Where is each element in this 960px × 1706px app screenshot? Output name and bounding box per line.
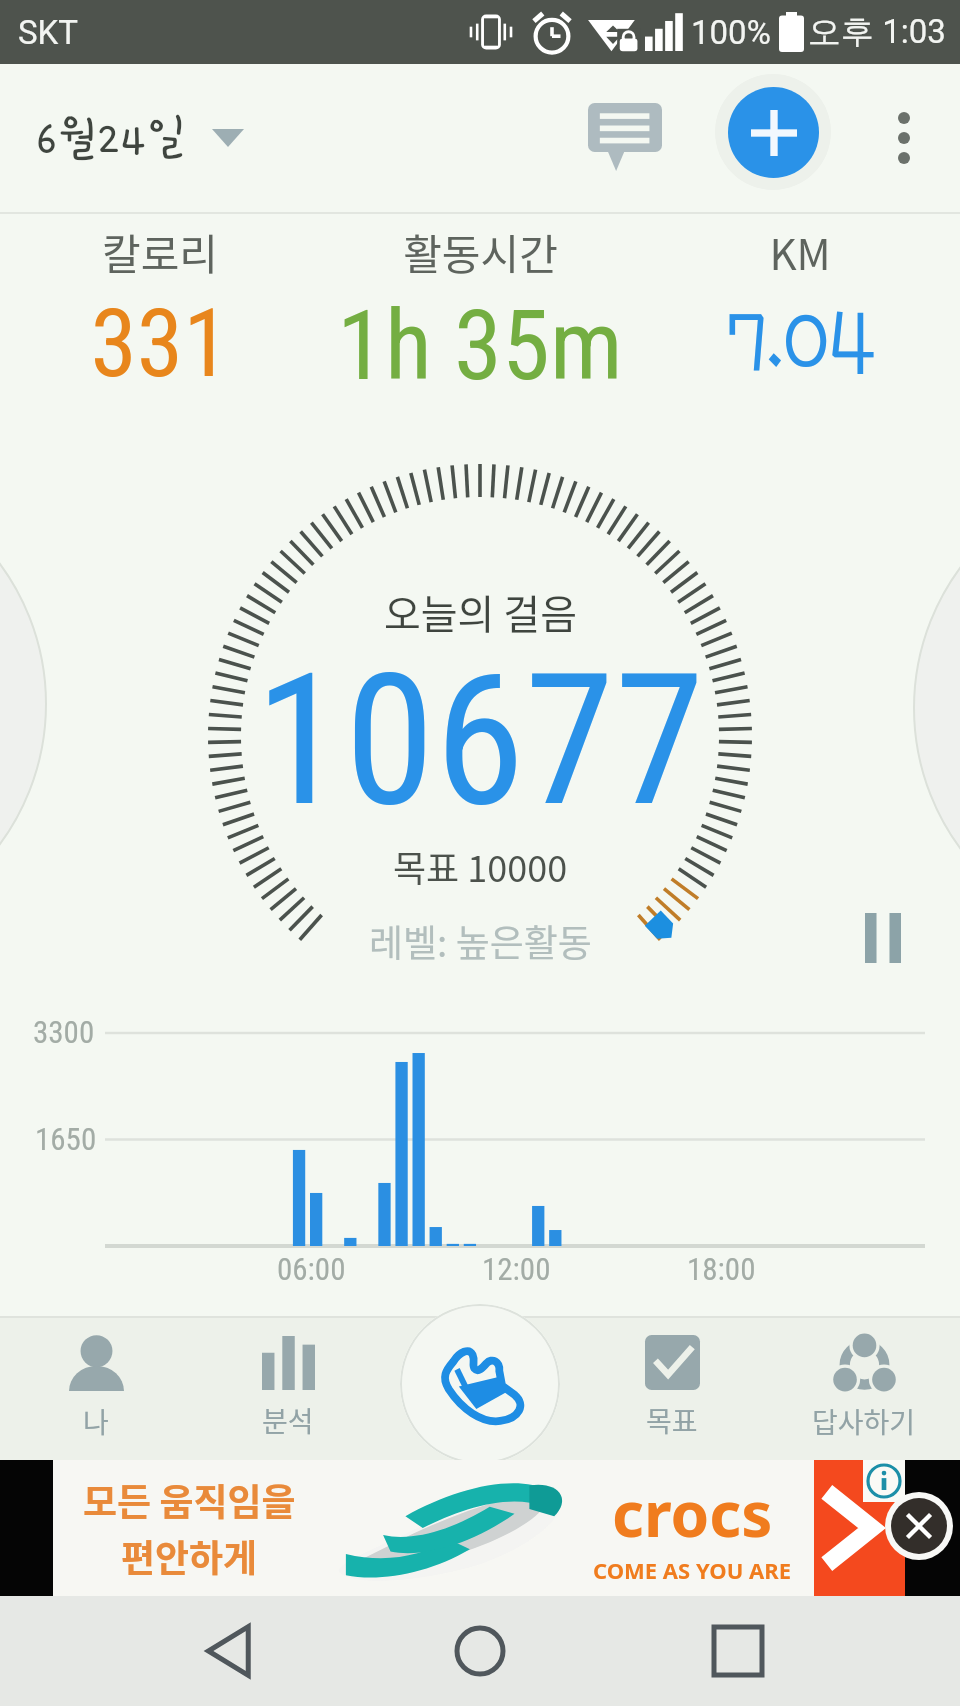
staticText: 목표 bbox=[646, 1400, 698, 1441]
staticText: crocs bbox=[612, 1471, 773, 1555]
button[interactable]: 모든 움직임을 bbox=[53, 1460, 905, 1596]
staticText: SKT bbox=[18, 13, 78, 52]
staticText: 18:00 bbox=[687, 1251, 756, 1287]
button[interactable]: Messages bbox=[575, 87, 675, 187]
staticText: 1650 bbox=[35, 1121, 97, 1157]
staticText: 오늘의 걸음 bbox=[384, 583, 577, 641]
staticText: 331 bbox=[90, 289, 230, 399]
staticText: 모든 움직임을 bbox=[83, 1473, 296, 1527]
staticText: 분석 bbox=[262, 1400, 314, 1441]
staticText: 100% bbox=[691, 13, 771, 52]
staticText: 3300 bbox=[33, 1014, 95, 1050]
staticText: 편안하게 bbox=[121, 1529, 258, 1583]
staticText: 목표 10000 bbox=[393, 840, 568, 892]
button[interactable]: KM bbox=[640, 216, 960, 396]
button[interactable]: More options bbox=[858, 92, 950, 184]
staticText: 06:00 bbox=[277, 1251, 346, 1287]
button[interactable]: 나 bbox=[0, 1316, 192, 1460]
button[interactable]: Recent apps bbox=[696, 1609, 780, 1693]
staticText: 답사하기 bbox=[812, 1401, 916, 1442]
button[interactable]: Add record bbox=[714, 73, 832, 191]
staticText: 칼로리 bbox=[102, 221, 218, 282]
staticText: 나 bbox=[83, 1401, 109, 1442]
button[interactable]: 활동시간 bbox=[320, 216, 640, 396]
button[interactable]: Back bbox=[188, 1609, 272, 1693]
button[interactable]: Home bbox=[438, 1609, 522, 1693]
button[interactable]: 분석 bbox=[192, 1316, 384, 1460]
button[interactable]: 답사하기 bbox=[768, 1316, 960, 1460]
button[interactable]: Pause bbox=[845, 900, 921, 976]
staticText: 7.04 bbox=[725, 296, 876, 387]
staticText: 10677 bbox=[255, 634, 705, 847]
staticText: 활동시간 bbox=[403, 221, 558, 282]
staticText: 레벨: 높은활동 bbox=[369, 914, 592, 968]
button[interactable]: Steps bbox=[400, 1304, 560, 1464]
staticText: KM bbox=[769, 221, 831, 282]
button[interactable]: Steps bbox=[384, 1316, 576, 1460]
staticText: 오후 1:03 bbox=[808, 11, 946, 53]
button[interactable]: 칼로리 bbox=[0, 216, 320, 396]
button[interactable]: Close ad bbox=[891, 1498, 947, 1554]
button[interactable]: 목표 bbox=[576, 1316, 768, 1460]
staticText: COME AS YOU ARE bbox=[593, 1555, 792, 1585]
staticText: 12:00 bbox=[482, 1251, 551, 1287]
staticText: 6월24일 bbox=[36, 113, 186, 163]
staticText: 1h 35m bbox=[337, 289, 623, 403]
button[interactable]: 6월24일 bbox=[16, 97, 260, 179]
